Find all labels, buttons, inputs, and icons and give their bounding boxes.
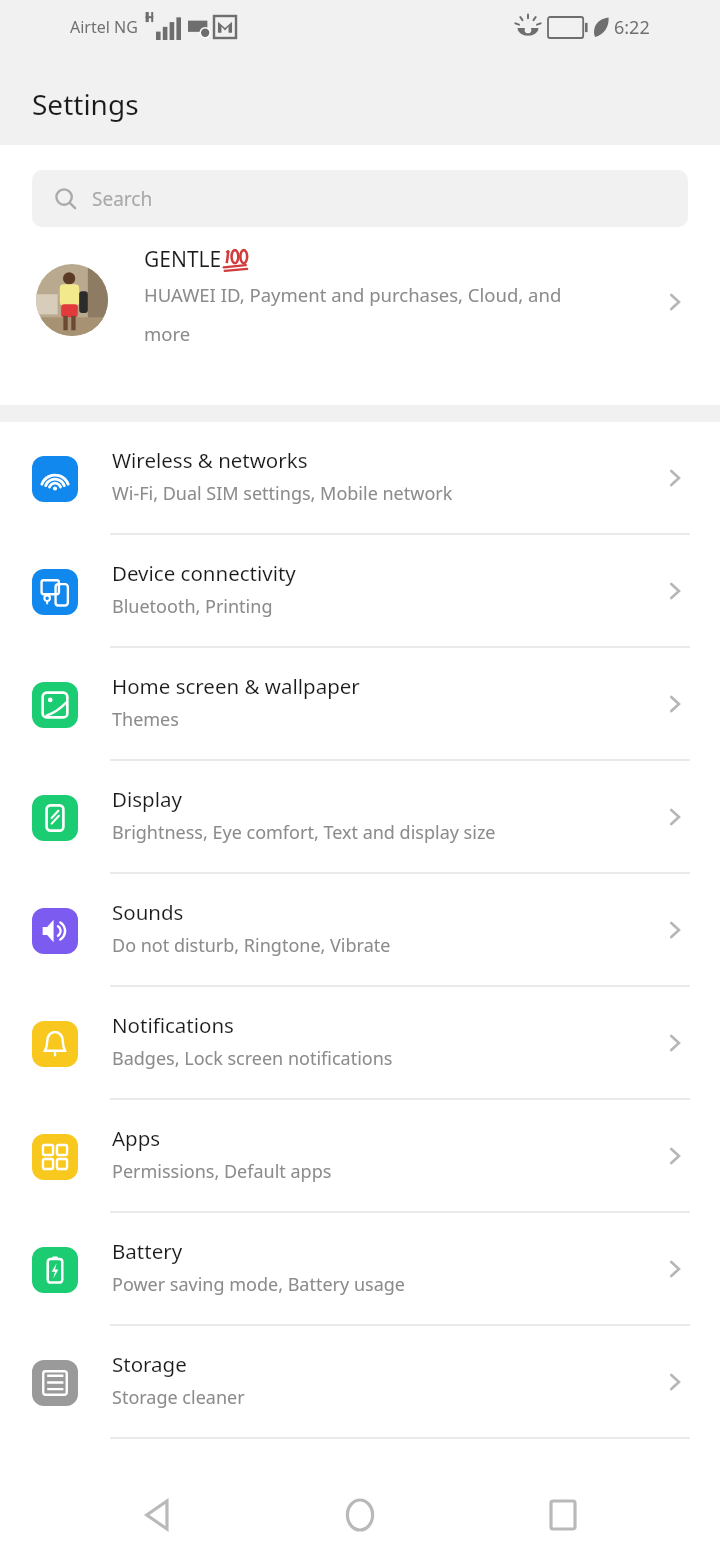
- other: Open account: [664, 291, 686, 313]
- button[interactable]: Home screen & wallpaper: [0, 648, 720, 761]
- staticText: HUAWEI ID, Payment and purchases, Cloud,…: [144, 282, 562, 307]
- staticText: Settings: [32, 85, 139, 123]
- staticText: 6:22: [614, 15, 650, 40]
- button[interactable]: Wireless & networks: [0, 422, 720, 535]
- staticText: more: [144, 321, 191, 346]
- staticText: Wireless & networks: [112, 446, 308, 474]
- other: Sounds: [664, 919, 686, 941]
- staticText: Device connectivity: [112, 559, 296, 587]
- button[interactable]: Storage: [0, 1326, 720, 1439]
- staticText: Do not disturb, Ringtone, Vibrate: [112, 933, 391, 958]
- staticText: Airtel NG: [70, 16, 138, 38]
- staticText: Wi-Fi, Dual SIM settings, Mobile network: [112, 481, 453, 506]
- staticText: Themes: [112, 707, 179, 732]
- other: Wireless & networks: [664, 467, 686, 489]
- staticText: Permissions, Default apps: [112, 1159, 332, 1184]
- staticText: Display: [112, 785, 182, 813]
- staticText: GENTLE: [144, 245, 222, 274]
- button[interactable]: Back: [113, 1470, 203, 1560]
- other: Home screen & wallpaper: [664, 693, 686, 715]
- staticText: Bluetooth, Printing: [112, 594, 273, 619]
- button[interactable]: Battery: [0, 1213, 720, 1326]
- button[interactable]: Search: [32, 170, 688, 227]
- staticText: Battery: [112, 1237, 183, 1265]
- button[interactable]: Sounds: [0, 874, 720, 987]
- button[interactable]: Recent apps: [518, 1470, 608, 1560]
- other: Apps: [664, 1145, 686, 1167]
- button[interactable]: Display: [0, 761, 720, 874]
- staticText: Sounds: [112, 898, 184, 926]
- staticText: Brightness, Eye comfort, Text and displa…: [112, 820, 496, 845]
- staticText: Power saving mode, Battery usage: [112, 1272, 405, 1297]
- button[interactable]: GENTLE: [0, 227, 720, 405]
- other: Notifications: [664, 1032, 686, 1054]
- other: Display: [664, 806, 686, 828]
- other: Device connectivity: [664, 580, 686, 602]
- staticText: Home screen & wallpaper: [112, 672, 360, 700]
- button[interactable]: Home: [315, 1470, 405, 1560]
- button[interactable]: Device connectivity: [0, 535, 720, 648]
- staticText: Badges, Lock screen notifications: [112, 1046, 393, 1071]
- staticText: Search: [92, 186, 153, 212]
- staticText: Notifications: [112, 1011, 234, 1039]
- other: Storage: [664, 1371, 686, 1393]
- button[interactable]: Notifications: [0, 987, 720, 1100]
- staticText: Apps: [112, 1124, 161, 1152]
- staticText: Storage cleaner: [112, 1385, 245, 1410]
- button[interactable]: Apps: [0, 1100, 720, 1213]
- other: Battery: [664, 1258, 686, 1280]
- staticText: Storage: [112, 1350, 187, 1378]
